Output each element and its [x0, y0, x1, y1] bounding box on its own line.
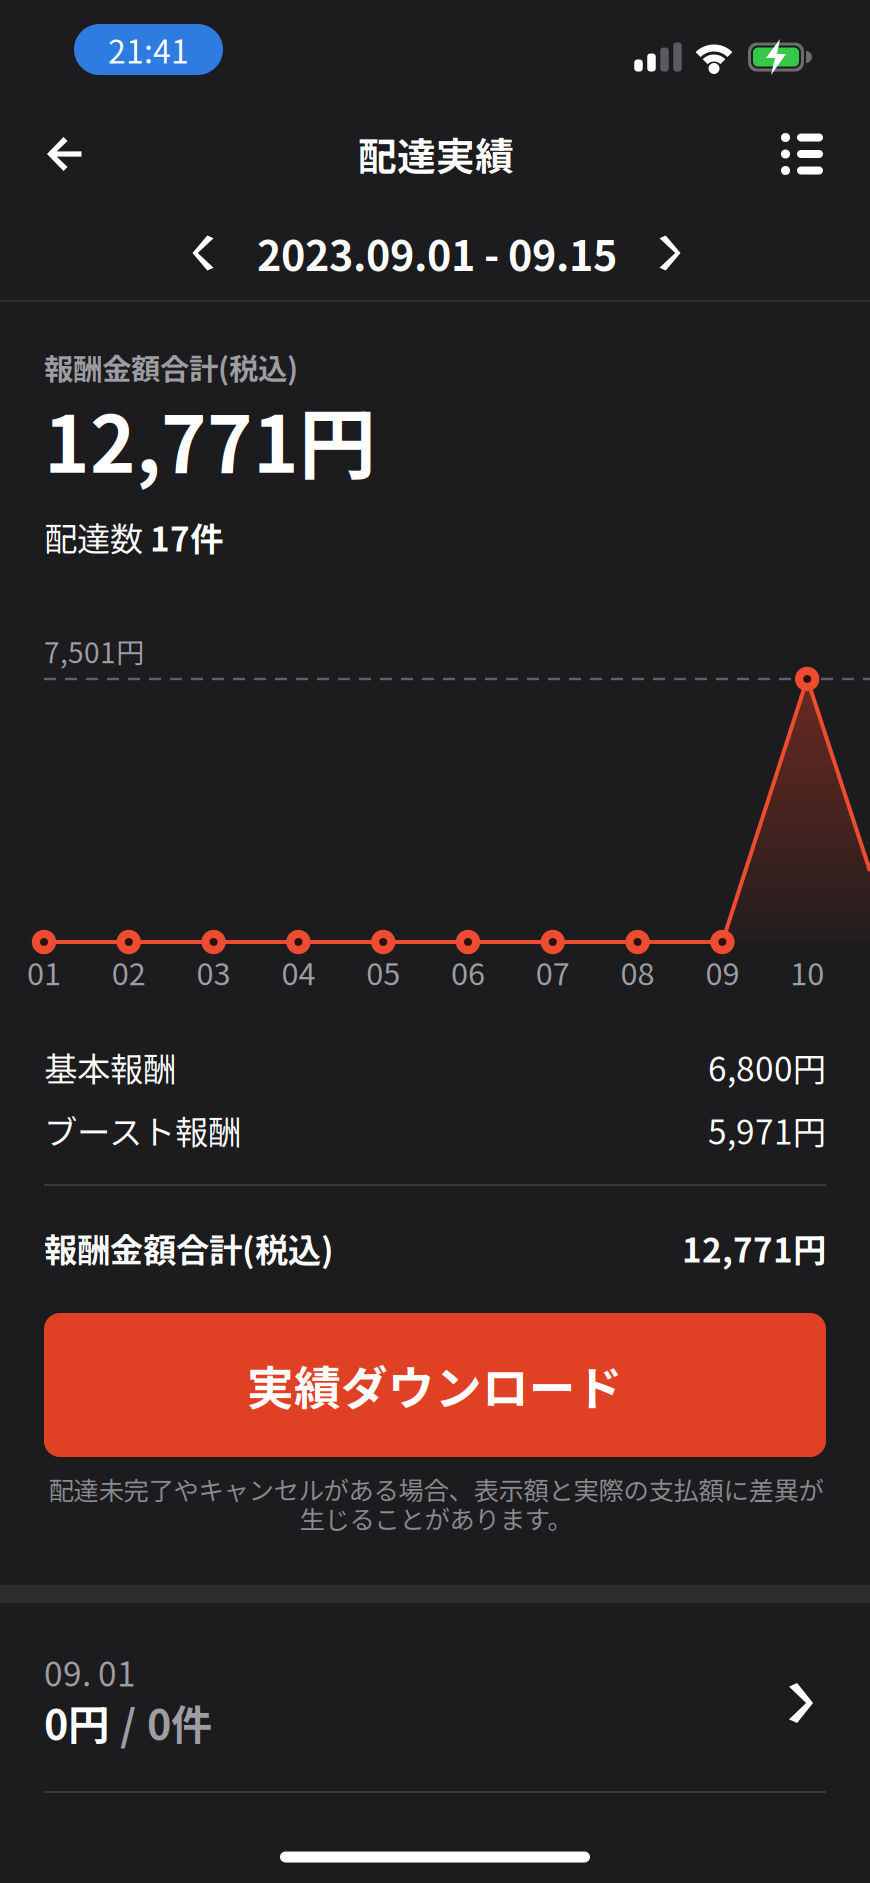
staticText: 6,800円: [708, 1043, 826, 1091]
staticText: 02: [112, 950, 146, 994]
staticText: 実績ダウンロード: [247, 1351, 623, 1419]
staticText: 12,771円: [682, 1224, 826, 1272]
staticText: 21:41: [108, 26, 189, 73]
staticText: 07: [536, 950, 570, 994]
staticText: 配達実績: [358, 126, 514, 182]
staticText: 配達数: [44, 513, 150, 561]
staticText: 2023.09.01 - 09.15: [257, 223, 617, 283]
staticText: 06: [451, 950, 485, 994]
button[interactable]: Menu: [757, 112, 847, 196]
staticText: 7,501円: [44, 631, 144, 671]
staticText: 生じることがあります。: [299, 1500, 572, 1536]
staticText: 08: [621, 950, 655, 994]
staticText: 10: [790, 950, 824, 994]
staticText: 09. 01: [44, 1648, 136, 1696]
button[interactable]: 実績ダウンロード: [44, 1313, 826, 1457]
button[interactable]: Next period: [633, 216, 707, 290]
staticText: 01: [27, 950, 61, 994]
staticText: /: [120, 1692, 136, 1752]
staticText: 05: [366, 950, 400, 994]
staticText: 0円: [44, 1692, 109, 1752]
staticText: ブースト報酬: [44, 1106, 241, 1154]
button[interactable]: Previous period: [166, 216, 240, 290]
staticText: 12,771円: [44, 383, 376, 495]
staticText: 09: [705, 950, 739, 994]
staticText: 03: [197, 950, 231, 994]
staticText: 配達未完了やキャンセルがある場合、表示額と実際の支払額に差異が: [48, 1471, 823, 1507]
staticText: 5,971円: [708, 1106, 826, 1154]
staticText: 報酬金額合計(税込): [44, 1224, 334, 1272]
staticText: 報酬金額合計(税込): [44, 346, 298, 388]
staticText: 0件: [147, 1692, 212, 1752]
staticText: 基本報酬: [44, 1043, 176, 1091]
button[interactable]: 09. 01: [0, 1603, 870, 1793]
staticText: 17件: [150, 513, 223, 561]
staticText: 04: [281, 950, 315, 994]
button[interactable]: Back: [17, 112, 113, 196]
